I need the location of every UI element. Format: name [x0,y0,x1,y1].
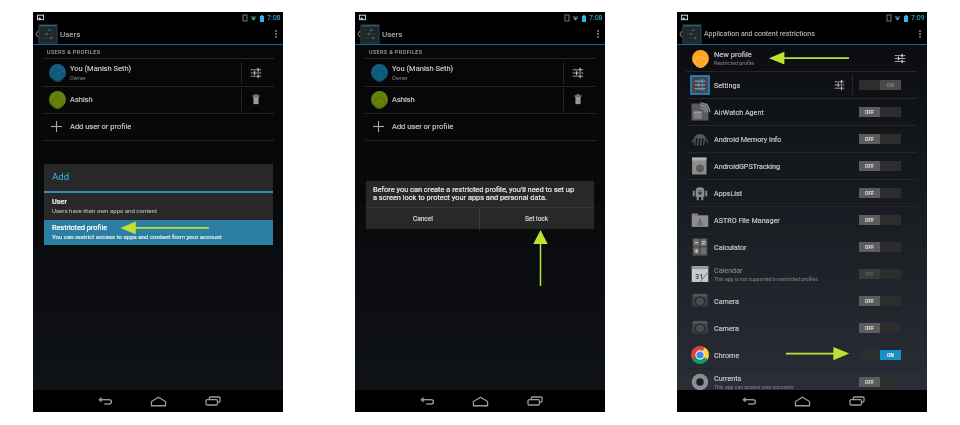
button[interactable]: Set lock [480,208,594,230]
staticText: a screen lock to protect your apps and p… [373,193,547,202]
button[interactable]: OFF [859,323,901,333]
button[interactable]: OFF [859,188,901,198]
button[interactable]: Home [473,394,488,408]
other: Delete user [574,94,582,105]
button[interactable]: Restricted profile [44,220,273,245]
button[interactable]: ASTRO File Manager [677,206,927,233]
staticText: This app can access your accounts [714,384,794,390]
button[interactable]: Recent apps [849,394,864,408]
button[interactable]: Recent apps [205,394,220,408]
button[interactable]: New profile [677,45,927,71]
button[interactable]: ON [859,80,901,90]
button[interactable]: Recent apps [527,394,542,408]
button[interactable]: Camera [677,287,927,314]
staticText: Camera [714,297,739,305]
button[interactable]: More options [914,28,926,40]
button[interactable]: Back [97,394,112,408]
button[interactable]: Calculator [677,233,927,260]
staticText: Settings [714,81,741,89]
staticText: Owner [392,75,408,81]
button[interactable]: Settings [677,71,927,98]
staticText: ASTRO File Manager [714,216,780,224]
button[interactable]: OFF [859,296,901,306]
button[interactable]: Chrome [677,341,927,368]
button[interactable]: Cancel [366,208,479,230]
staticText: Camera [714,324,739,332]
button[interactable]: OFF [859,377,901,387]
button[interactable]: OFF [859,215,901,225]
staticText: Calendar [714,266,743,274]
staticText: Application and content restrictions [704,30,815,38]
staticText: Users [60,30,81,39]
staticText: Set lock [525,215,549,223]
button[interactable]: More options [592,28,604,40]
staticText: OFF [865,245,875,250]
staticText: 7:08 [267,14,281,22]
button[interactable]: You (Manish Seth) [355,59,605,86]
staticText: OFF [865,191,875,196]
button[interactable]: Android Memory Info [677,125,927,152]
staticText: USERS & PROFILES [369,49,423,55]
staticText: Chrome [714,351,740,359]
staticText: Android Memory Info [714,135,782,143]
staticText: ON [887,353,895,358]
staticText: Calculator [714,243,747,251]
button[interactable]: OFF [859,161,901,171]
staticText: 7:08 [589,14,603,22]
staticText: Cancel [413,215,433,223]
button[interactable]: You (Manish Seth) [33,59,283,86]
button[interactable]: Back [419,394,434,408]
staticText: AirWatch Agent [714,108,764,116]
button[interactable]: Ashish [355,86,605,113]
button[interactable]: 31 [677,260,927,287]
button[interactable]: User [44,193,273,219]
staticText: Add user or profile [70,122,132,131]
button[interactable]: Add user or profile [33,113,283,140]
button[interactable]: Add user or profile [355,113,605,140]
staticText: OFF [865,299,875,304]
other: Navigate up [35,30,39,38]
staticText: Owner [70,75,86,81]
staticText: 7:09 [911,14,925,22]
staticText: You (Manish Seth) [392,64,454,73]
staticText: Users [382,30,403,39]
staticText: Restricted profile [714,60,755,66]
staticText: OFF [865,110,875,115]
staticText: OFF [865,164,875,169]
staticText: Users have their own apps and content [52,207,157,214]
other: Profile settings [572,68,584,78]
button[interactable]: AndroidGPSTracking [677,152,927,179]
button[interactable]: OFF [859,134,901,144]
other: Navigate up [679,30,683,38]
staticText: AppsList [714,189,743,197]
button[interactable]: Home [151,394,166,408]
other: App settings [834,80,845,90]
button[interactable]: OFF [859,242,901,252]
other: Profile settings [250,68,262,78]
staticText: OFF [865,218,875,223]
staticText: USERS & PROFILES [47,49,101,55]
staticText: Add user or profile [392,122,454,131]
other: Delete user [252,94,260,105]
button[interactable]: OFF [859,107,901,117]
staticText: Restricted profile [52,223,108,232]
button[interactable]: AirWatch Agent [677,98,927,125]
button[interactable]: Camera [677,314,927,341]
staticText: Before you can create a restricted profi… [373,185,575,194]
button[interactable]: ON [859,350,901,360]
button[interactable]: AppsList [677,179,927,206]
button[interactable]: Ashish [33,86,283,113]
staticText: OFF [865,326,875,331]
button[interactable]: Home [795,394,810,408]
button[interactable]: Back [741,394,756,408]
staticText: OFF [865,272,875,277]
staticText: OFF [865,137,875,142]
staticText: OFF [865,380,875,385]
staticText: User [52,197,68,206]
other: Navigate up [357,30,361,38]
staticText: You (Manish Seth) [70,64,132,73]
button[interactable]: Currents [677,368,927,395]
button[interactable]: More options [270,28,282,40]
button[interactable]: OFF [859,269,901,279]
staticText: New profile [714,50,752,59]
